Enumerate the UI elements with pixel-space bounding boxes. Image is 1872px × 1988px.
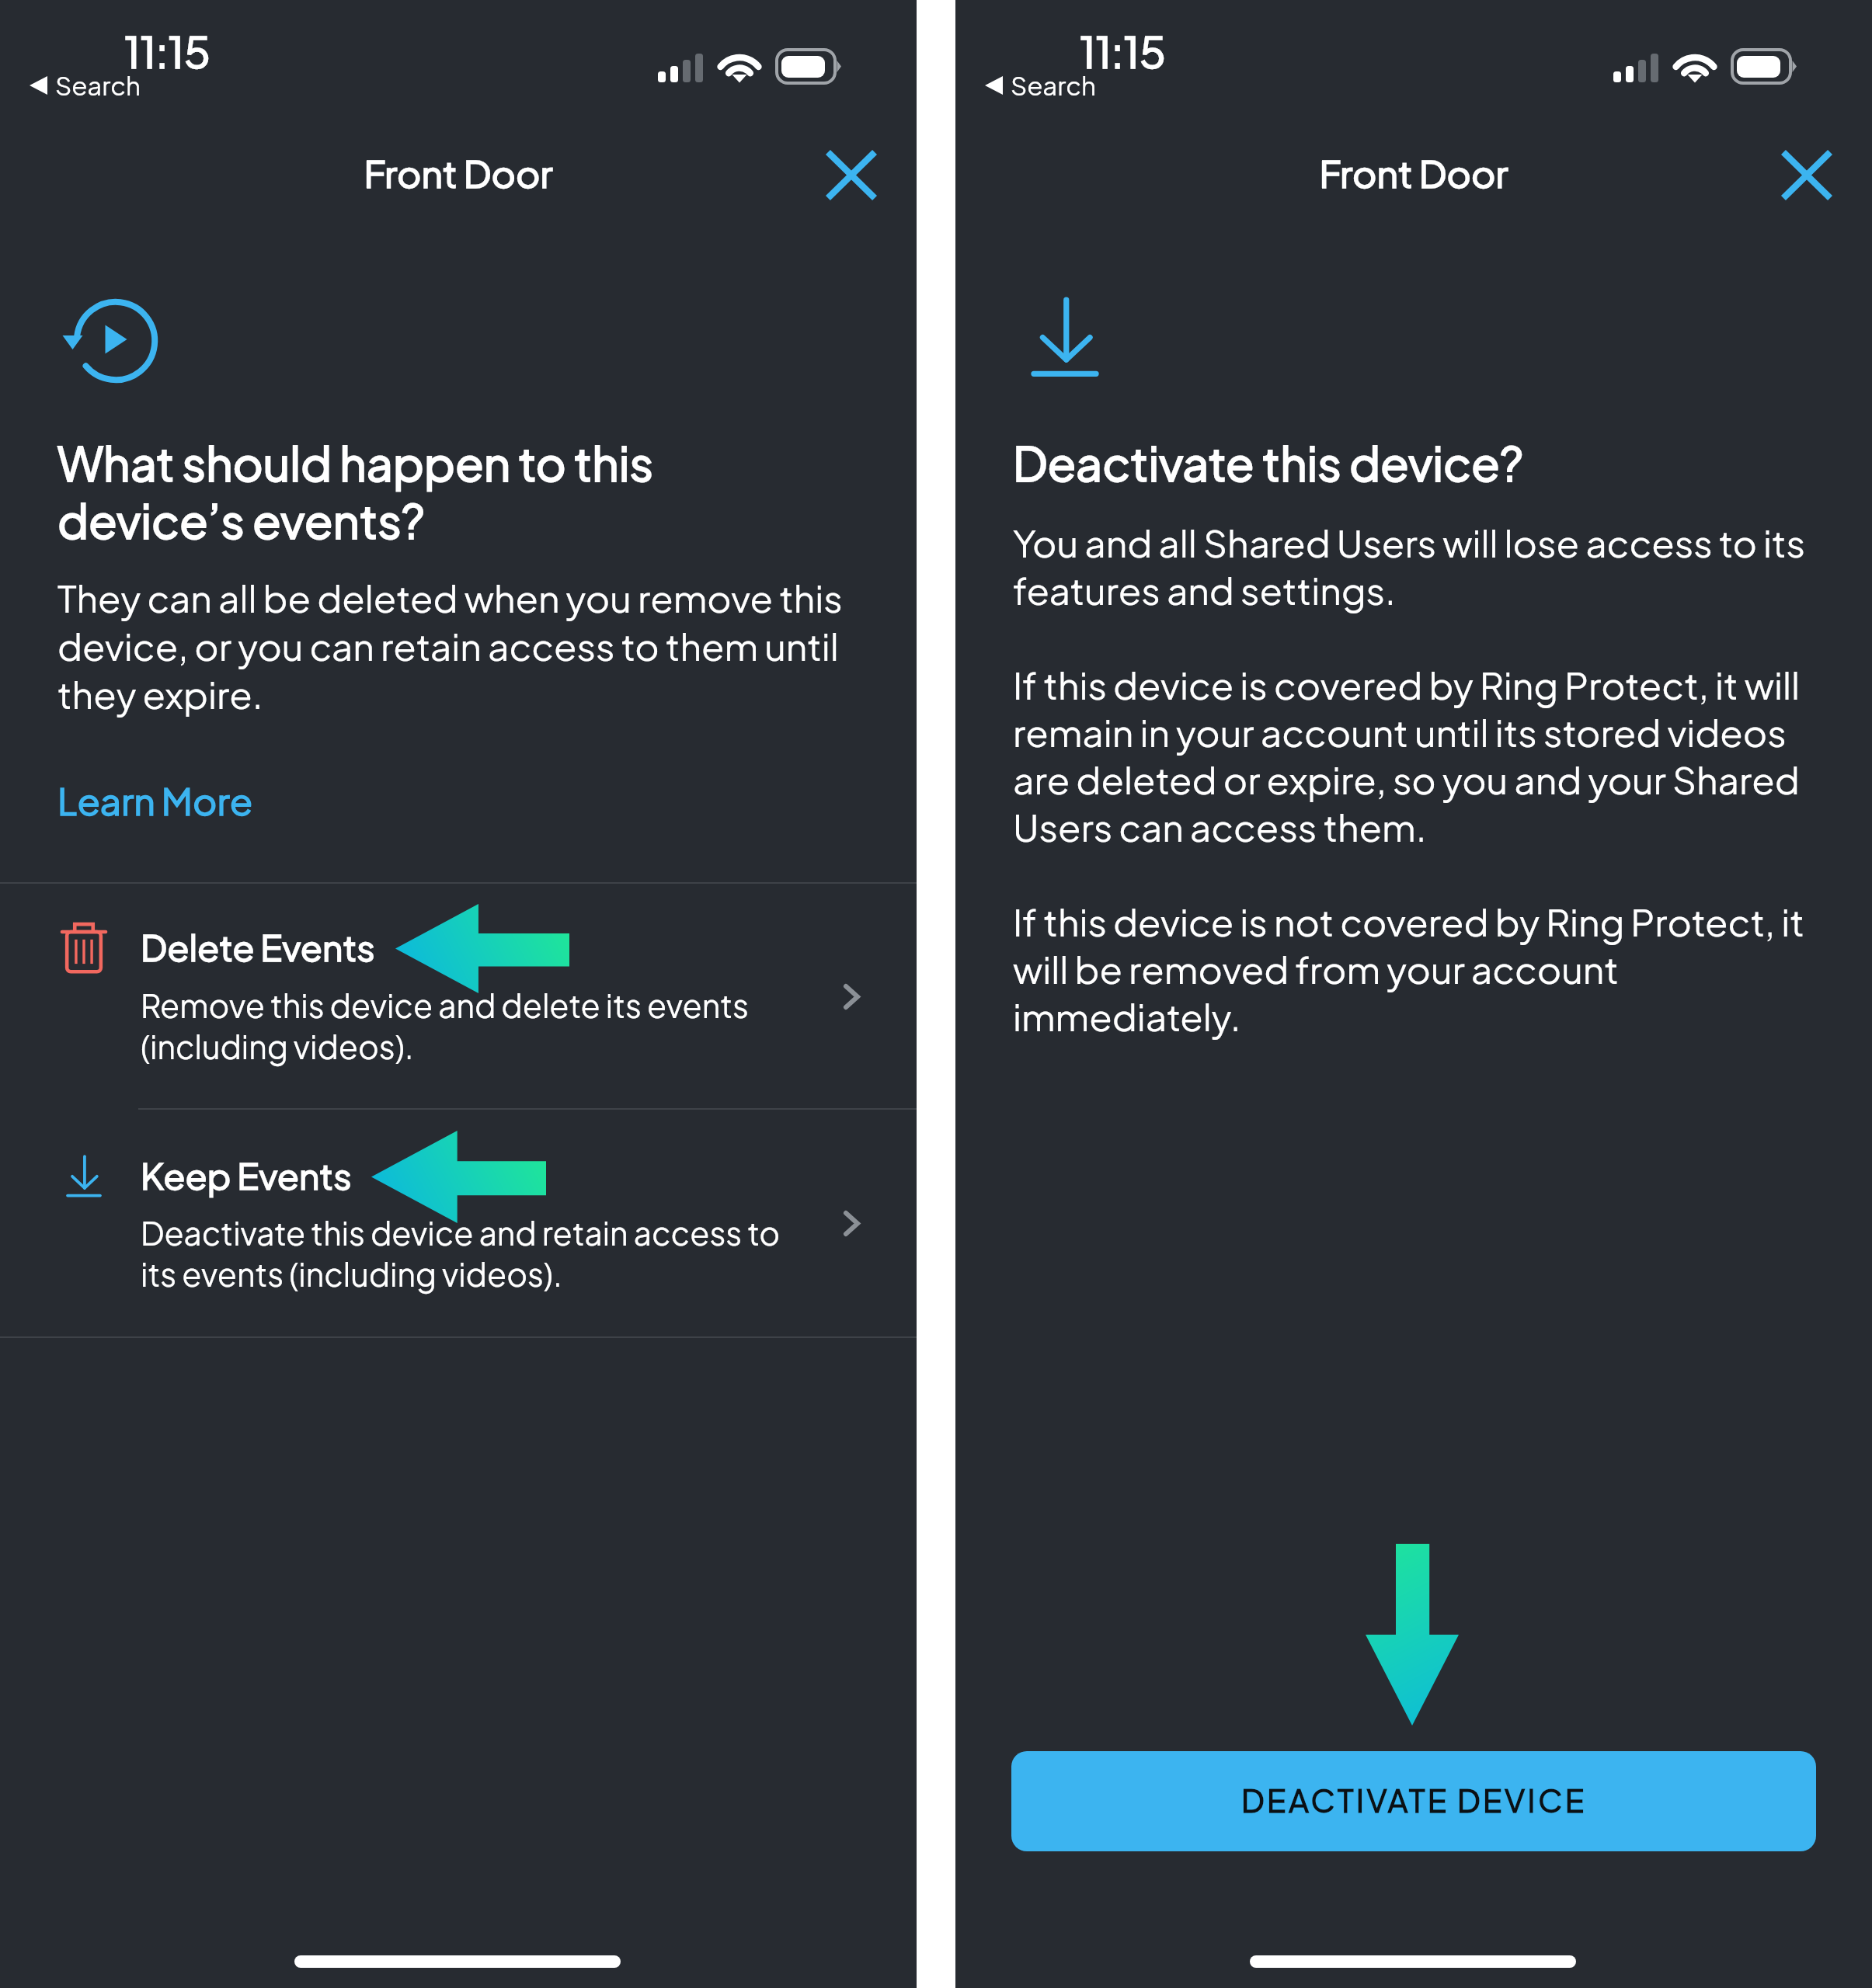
- staticText: Deactivate this device and retain access…: [141, 1212, 824, 1295]
- staticText: 11:15: [124, 24, 211, 78]
- staticText: Delete Events: [141, 924, 375, 969]
- staticText: You and all Shared Users will lose acces…: [1013, 519, 1813, 1040]
- staticText: Deactivate this device?: [1013, 433, 1523, 492]
- staticText: Learn More: [57, 777, 253, 823]
- button[interactable]: DEACTIVATE DEVICE: [1011, 1751, 1816, 1851]
- staticText: What should happen to this device’s even…: [57, 433, 842, 549]
- button[interactable]: Learn More: [57, 777, 253, 823]
- staticText: Keep Events: [141, 1152, 352, 1197]
- button[interactable]: Keep Events: [0, 1110, 917, 1336]
- button[interactable]: Close: [1769, 137, 1844, 212]
- staticText: Front Door: [0, 149, 917, 196]
- staticText: Remove this device and delete its events…: [141, 985, 824, 1067]
- button[interactable]: Delete Events: [0, 885, 917, 1108]
- staticText: Search: [55, 69, 141, 102]
- staticText: Search: [1011, 69, 1097, 102]
- staticText: 11:15: [1080, 24, 1166, 78]
- button[interactable]: Close: [814, 137, 889, 212]
- staticText: They can all be deleted when you remove …: [57, 574, 850, 718]
- staticText: Front Door: [955, 149, 1872, 196]
- staticText: DEACTIVATE DEVICE: [1241, 1780, 1587, 1819]
